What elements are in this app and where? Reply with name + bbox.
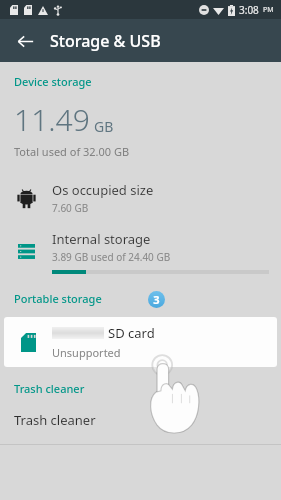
staticText: SD card [108, 324, 155, 342]
staticText: GB [94, 117, 114, 136]
staticText: 3 [153, 292, 160, 307]
button[interactable]: SD card [4, 317, 277, 367]
staticText: Trash cleaner [14, 381, 85, 396]
staticText: Internal storage [52, 230, 151, 248]
staticText: Storage & USB [50, 30, 161, 52]
staticText: 3.89 GB used of 24.40 GB [52, 250, 171, 264]
staticText: Total used of 32.00 GB [14, 144, 130, 159]
staticText: 3:08 [239, 3, 259, 17]
staticText: Os occupied size [52, 181, 154, 199]
staticText: 7.60 GB [52, 201, 89, 215]
staticText: 11.49 [14, 99, 90, 140]
staticText: Unsupported [52, 345, 121, 360]
staticText: Device storage [14, 74, 92, 89]
button[interactable]: Internal storage [0, 223, 281, 281]
staticText: PM [263, 5, 274, 15]
staticText: Portable storage [14, 291, 102, 306]
button[interactable]: Os occupied size [0, 173, 281, 223]
button[interactable]: Trash cleaner [0, 408, 281, 432]
button[interactable]: Back [8, 24, 42, 58]
staticText: Trash cleaner [14, 411, 96, 429]
